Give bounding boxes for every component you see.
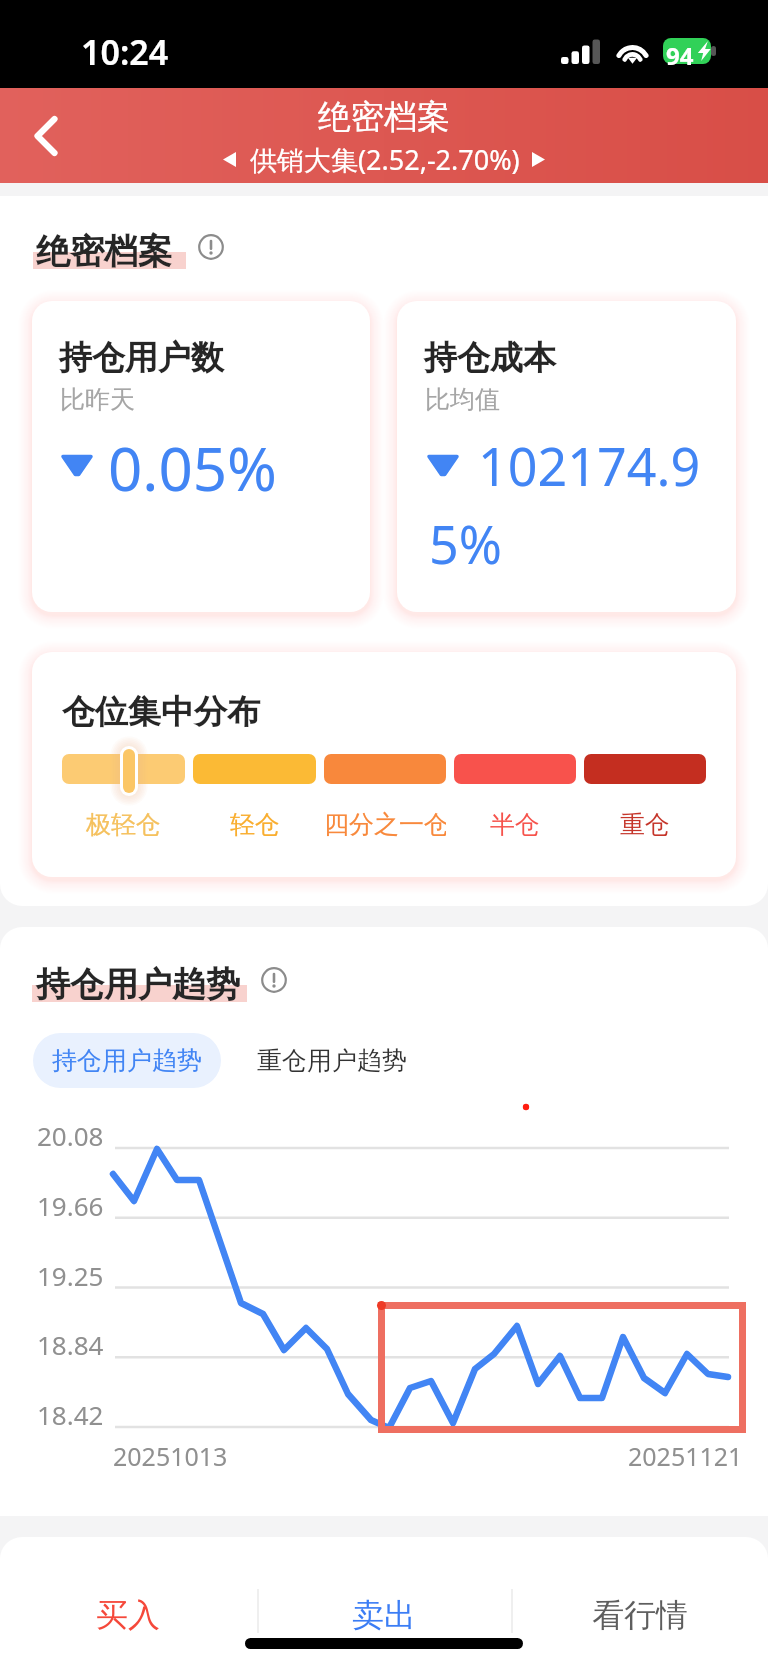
staticText: 5%	[429, 508, 502, 579]
staticText: 20251121	[628, 1439, 743, 1473]
staticText: 重仓	[620, 809, 670, 840]
staticText: 102174.9	[478, 430, 701, 501]
staticText: 持仓用户趋势	[36, 963, 240, 1006]
button[interactable]: 重仓用户趋势	[244, 1033, 420, 1088]
staticText: 持仓用户数	[59, 337, 224, 379]
button[interactable]: 买入	[0, 1569, 256, 1663]
staticText: 20251013	[113, 1439, 228, 1473]
staticText: 19.25	[37, 1258, 104, 1293]
button[interactable]: Back	[10, 100, 82, 172]
button[interactable]: 卖出	[256, 1569, 512, 1663]
staticText: 0.05%	[108, 427, 277, 509]
staticText: 卖出	[352, 1595, 416, 1635]
staticText: 18.42	[37, 1397, 104, 1432]
button[interactable]: 持仓用户趋势	[33, 1033, 221, 1088]
button[interactable]: 持仓成本	[397, 301, 736, 612]
button[interactable]: Info	[259, 965, 289, 995]
staticText: 四分之一仓	[324, 809, 446, 840]
staticText: 轻仓	[230, 809, 280, 840]
staticText: 半仓	[490, 809, 540, 840]
staticText: 极轻仓	[86, 809, 161, 840]
staticText: 20.08	[37, 1118, 104, 1153]
staticText: 比昨天	[60, 384, 135, 415]
staticText: 看行情	[592, 1595, 688, 1635]
staticText: 绝密档案	[36, 230, 172, 273]
staticText: 绝密档案	[318, 96, 450, 138]
button[interactable]: Info	[196, 232, 226, 262]
staticText: 10:24	[81, 29, 169, 75]
staticText: 19.66	[37, 1188, 104, 1223]
button[interactable]: 持仓用户数	[32, 301, 370, 612]
staticText: 买入	[96, 1595, 160, 1635]
staticText: 持仓成本	[424, 337, 556, 379]
staticText: 18.84	[37, 1327, 104, 1362]
staticText: 重仓用户趋势	[257, 1045, 407, 1076]
staticText: 持仓用户趋势	[52, 1045, 202, 1076]
staticText: 94	[666, 39, 694, 72]
staticText: 比均值	[425, 384, 500, 415]
staticText: 供销大集(2.52,-2.70%)	[250, 141, 520, 178]
button[interactable]: 看行情	[512, 1569, 768, 1663]
staticText: 仓位集中分布	[62, 691, 260, 733]
